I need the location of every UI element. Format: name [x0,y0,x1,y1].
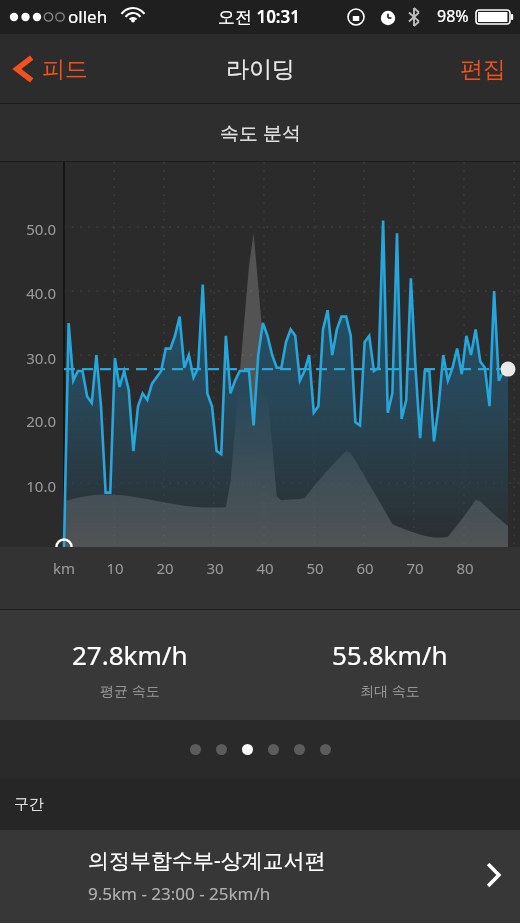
other: Open segment [486,864,500,886]
staticText: 최대 속도 [360,681,420,700]
staticText: 20 [145,558,185,578]
button[interactable] [190,744,201,755]
staticText: 30.0 [4,348,56,368]
staticText: 70 [395,558,435,578]
button[interactable] [294,744,305,755]
staticText: 27.8km/h [72,637,188,672]
staticText: 속도 분석 [220,120,301,146]
staticText: olleh [68,5,108,28]
staticText: 98% [437,5,469,27]
staticText: km [44,558,84,578]
staticText: 40.0 [4,283,56,303]
staticText: 라이딩 [226,55,295,84]
staticText: 편집 [460,55,506,84]
staticText: 구간 [14,795,44,814]
staticText: 55.8km/h [332,637,448,672]
button[interactable] [268,744,279,755]
button[interactable]: 27.8km/h [0,610,260,700]
staticText: 20.0 [4,411,56,431]
staticText: 9.5km - 23:00 - 25km/h [88,882,271,905]
button[interactable]: 55.8km/h [260,610,520,700]
staticText: 50.0 [4,219,56,239]
staticText: 평균 속도 [100,681,160,700]
button[interactable] [320,744,331,755]
button[interactable] [242,744,253,755]
button[interactable]: 편집 [446,45,520,94]
staticText: 10 [95,558,135,578]
staticText: 40 [245,558,285,578]
button[interactable]: 피드 [0,54,98,84]
staticText: 의정부합수부-상계교서편 [88,846,326,875]
staticText: 10.0 [4,476,56,496]
staticText: 50 [295,558,335,578]
staticText: 오전 10:31 [218,5,301,28]
staticText: 30 [195,558,235,578]
staticText: 80 [445,558,485,578]
button[interactable]: 의정부합수부-상계교서편 [0,830,520,920]
staticText: 60 [345,558,385,578]
button[interactable] [216,744,227,755]
staticText: 피드 [42,55,88,84]
